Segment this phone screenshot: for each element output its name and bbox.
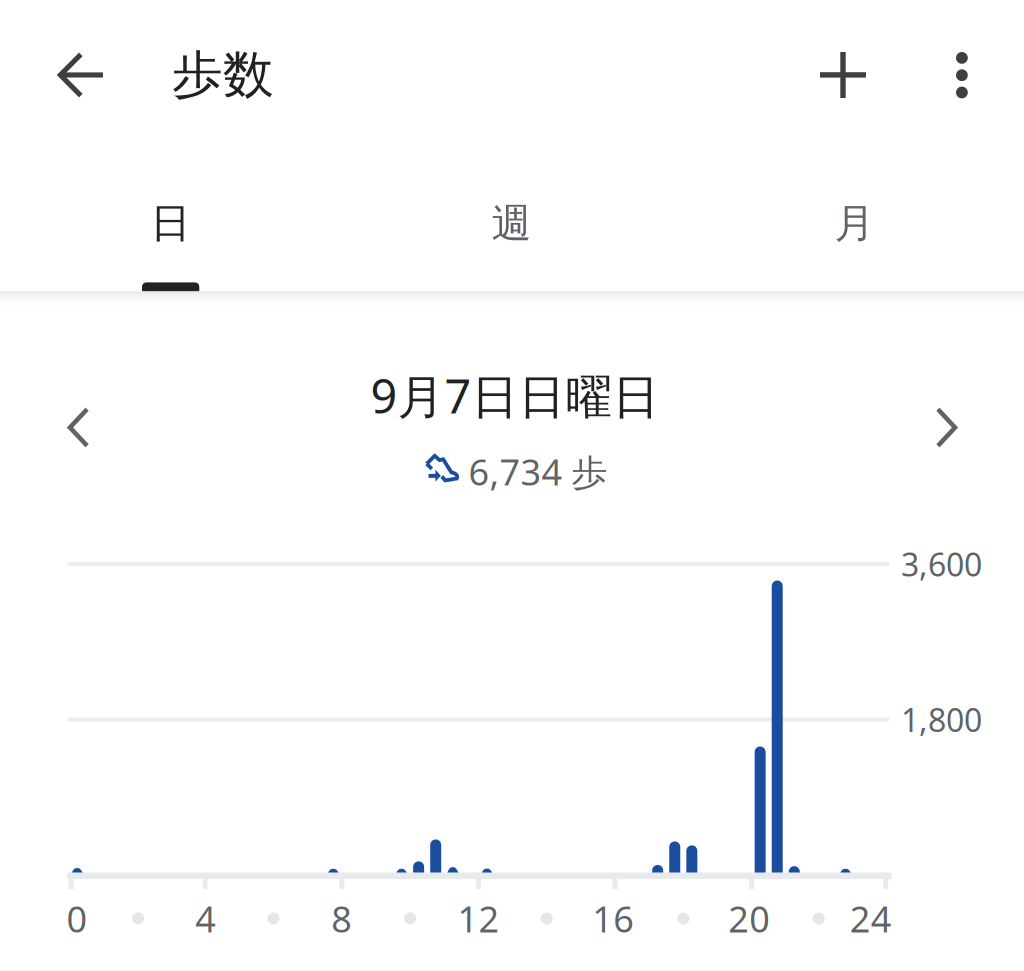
button[interactable]: 週 xyxy=(341,158,682,288)
staticText: 24 xyxy=(850,895,892,942)
staticText: 3,600 xyxy=(901,543,982,585)
button[interactable]: Back xyxy=(30,25,130,125)
staticText: 9月7日日曜日 xyxy=(370,364,659,426)
staticText: 歩数 xyxy=(172,44,274,106)
staticText: 日 xyxy=(150,199,190,248)
staticText: 4 xyxy=(195,895,216,942)
staticText: 8 xyxy=(331,895,352,942)
button[interactable]: Next day xyxy=(892,367,1002,487)
button[interactable]: 月 xyxy=(683,158,1024,288)
button[interactable]: More options xyxy=(912,25,1012,125)
button[interactable]: Add xyxy=(793,25,893,125)
staticText: 1,800 xyxy=(901,698,982,741)
button[interactable]: 日 xyxy=(0,158,341,288)
staticText: 16 xyxy=(592,895,634,942)
staticText: 20 xyxy=(728,895,770,942)
staticText: 月 xyxy=(834,199,874,248)
staticText: 6,734 歩 xyxy=(468,448,607,495)
staticText: 12 xyxy=(457,895,499,942)
staticText: 0 xyxy=(66,895,87,942)
button[interactable]: Previous day xyxy=(23,367,133,487)
staticText: 週 xyxy=(491,199,531,248)
